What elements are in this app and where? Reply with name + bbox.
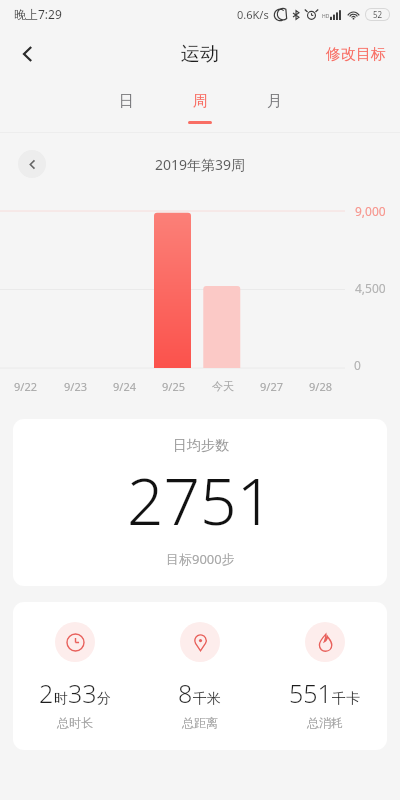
staticText: 分 xyxy=(97,690,111,708)
staticText: 2751 xyxy=(127,457,274,544)
staticText: 9/24 xyxy=(113,379,136,394)
staticText: 9,000 xyxy=(355,203,386,219)
staticText: 551 xyxy=(289,676,332,710)
staticText: 0 xyxy=(354,357,361,373)
staticText: 52 xyxy=(373,9,383,20)
staticText: 千米 xyxy=(193,690,221,708)
button[interactable]: 修改目标 xyxy=(312,35,400,74)
staticText: 今天 xyxy=(212,379,234,393)
staticText: 月 xyxy=(267,92,282,111)
staticText: 33 xyxy=(68,676,97,710)
staticText: 9/28 xyxy=(309,379,332,394)
button[interactable]: 2 xyxy=(13,622,137,730)
staticText: 千卡 xyxy=(332,690,360,708)
button[interactable]: 返回 xyxy=(6,32,50,76)
staticText: 2019年第39周 xyxy=(155,155,246,174)
button[interactable]: 月 xyxy=(237,80,311,132)
staticText: 2 xyxy=(39,676,54,710)
staticText: 目标9000步 xyxy=(166,550,235,568)
staticText: 0.6K/s xyxy=(237,7,269,22)
button[interactable]: 上一周 xyxy=(18,150,46,178)
staticText: 8 xyxy=(178,676,193,710)
staticText: 总消耗 xyxy=(307,715,343,730)
staticText: 周 xyxy=(193,92,208,111)
staticText: 晚上7:29 xyxy=(14,6,62,22)
staticText: 总时长 xyxy=(57,715,93,730)
staticText: 9/25 xyxy=(162,379,185,394)
staticText: 9/23 xyxy=(64,379,87,394)
button[interactable]: 8 xyxy=(137,622,262,730)
button[interactable]: 日均步数 xyxy=(13,419,387,586)
button[interactable]: 日 xyxy=(89,80,163,132)
staticText: 运动 xyxy=(181,42,219,66)
button[interactable]: 周 xyxy=(163,80,237,132)
staticText: 日均步数 xyxy=(173,437,229,455)
staticText: 总距离 xyxy=(182,715,218,730)
staticText: 修改目标 xyxy=(326,45,386,64)
staticText: 9/22 xyxy=(14,379,37,394)
staticText: 9/27 xyxy=(260,379,283,394)
button[interactable]: 551 xyxy=(262,622,387,730)
staticText: 日 xyxy=(119,92,134,111)
staticText: HD xyxy=(322,13,330,20)
staticText: 时 xyxy=(54,690,68,708)
staticText: 4,500 xyxy=(355,280,386,296)
